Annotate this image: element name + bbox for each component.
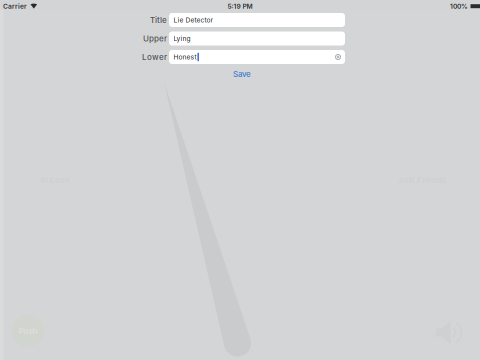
button[interactable]: Save — [217, 68, 267, 79]
staticText: Push — [18, 326, 37, 336]
staticText: 5:19 PM — [227, 2, 252, 10]
staticText: Lower — [142, 52, 167, 62]
staticText: Lie Detector — [173, 16, 213, 24]
staticText: Title — [150, 15, 167, 25]
button[interactable]: Lie Detector — [169, 13, 345, 27]
staticText: Honest — [173, 53, 196, 61]
staticText: Upper — [143, 34, 167, 43]
button[interactable]: Honest — [169, 50, 345, 64]
button[interactable]: Lying — [169, 31, 345, 45]
staticText: Lying — [173, 34, 190, 43]
staticText: 100% — [450, 2, 468, 10]
staticText: Carrier — [3, 2, 27, 10]
staticText: Save — [233, 69, 251, 79]
